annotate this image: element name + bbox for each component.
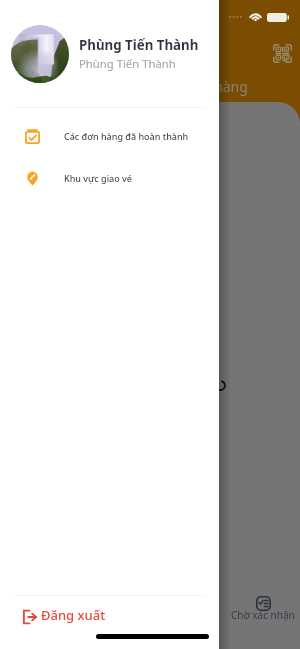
button[interactable]: Quét mã QR — [268, 39, 296, 67]
button[interactable]: Khu vực giao vé — [0, 157, 219, 199]
button[interactable]: Chờ xác nhận — [223, 596, 300, 625]
staticText: Chờ xác nhận — [231, 608, 295, 622]
staticText: Khu vực giao vé — [64, 172, 133, 184]
button[interactable]: Đăng xuất — [0, 596, 219, 634]
staticText: hàng — [214, 77, 248, 96]
staticText: Đăng xuất — [41, 606, 106, 624]
staticText: Phùng Tiến Thành — [79, 56, 176, 71]
button[interactable]: Các đơn hàng đã hoàn thành — [0, 115, 219, 157]
staticText: Các đơn hàng đã hoàn thành — [64, 130, 189, 142]
staticText: Phùng Tiến Thành — [79, 36, 199, 54]
